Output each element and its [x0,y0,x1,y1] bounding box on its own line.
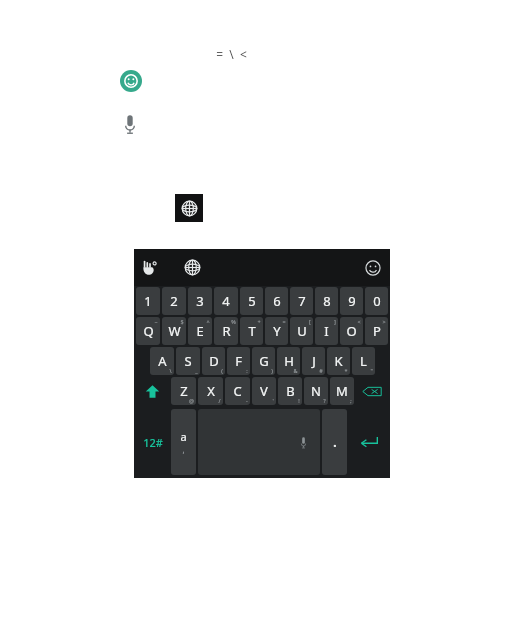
staticText: S [184,352,192,370]
staticText: ? [323,397,326,404]
staticText: , [182,444,185,455]
button[interactable]: 12# [135,407,170,477]
staticText: K [334,352,343,370]
staticText: F [235,352,242,370]
button[interactable]: Z [171,377,196,405]
staticText: P [373,322,381,340]
button[interactable]: 1 [136,287,160,315]
button[interactable]: A [150,347,174,375]
staticText: > [382,318,386,325]
staticText: B [286,382,295,400]
staticText: a [180,429,187,444]
staticText: 9 [348,292,356,310]
staticText: & [293,367,298,374]
button[interactable]: Backspace [355,376,389,406]
button[interactable]: C [225,377,250,405]
button[interactable]: S [176,347,200,375]
staticText: 6 [273,292,281,310]
staticText: O [346,322,357,340]
button[interactable]: 7 [290,287,313,315]
button[interactable]: B [278,377,302,405]
staticText: ; [350,397,352,404]
staticText: U [297,322,307,340]
button[interactable]: P [365,317,388,345]
button[interactable]: Shift [135,376,170,406]
staticText: Z [180,382,188,400]
button[interactable]: W [162,317,186,345]
button[interactable]: R [214,317,238,345]
button[interactable]: . [322,409,347,475]
button[interactable]: 9 [340,287,363,315]
staticText: = \ < [216,46,247,62]
staticText: \ [169,367,172,374]
button[interactable]: 4 [214,287,238,315]
button[interactable]: Q [136,317,160,345]
button[interactable]: Language [184,259,201,276]
staticText: G [259,352,269,370]
button[interactable]: U [290,317,313,345]
button[interactable]: X [198,377,223,405]
button[interactable]: 8 [315,287,338,315]
staticText: 5 [248,292,256,310]
staticText: ~ [154,318,158,325]
staticText: " [370,367,373,374]
button[interactable]: Emoji [120,70,142,92]
button[interactable]: Select input language [171,409,196,475]
staticText: ' [272,397,274,404]
button[interactable]: K [327,347,350,375]
button[interactable]: H [277,347,300,375]
staticText: ] [334,318,336,325]
staticText: 3 [196,292,204,310]
staticText: @ [189,397,194,404]
staticText: I [324,322,329,340]
button[interactable]: O [340,317,363,345]
staticText: [ [309,318,311,325]
staticText: - [246,397,248,404]
button[interactable]: Space [198,409,320,475]
button[interactable]: Y [265,317,288,345]
staticText: $ [180,318,184,325]
staticText: / [218,397,221,404]
button[interactable]: M [330,377,354,405]
button[interactable]: Emoji [365,260,381,276]
staticText: N [311,382,321,400]
button[interactable]: Gesture typing [141,259,158,276]
staticText: + [257,318,261,325]
staticText: W [168,322,181,340]
button[interactable]: 2 [162,287,186,315]
staticText: _ [195,367,198,374]
staticText: 0 [373,292,381,310]
button[interactable]: Enter [348,407,389,477]
button[interactable]: T [240,317,263,345]
staticText: % [231,318,236,325]
staticText: C [233,382,242,400]
button[interactable]: I [315,317,338,345]
staticText: * [344,367,348,374]
button[interactable]: L [352,347,375,375]
staticText: L [360,352,367,370]
staticText: Q [143,322,154,340]
staticText: D [209,352,219,370]
staticText: ) [271,367,273,374]
staticText: ^ [206,318,210,325]
button[interactable]: 5 [240,287,263,315]
button[interactable]: F [227,347,250,375]
button[interactable]: N [304,377,328,405]
staticText: X [207,382,215,400]
button[interactable]: Change language [175,194,203,222]
button[interactable]: V [252,377,276,405]
button[interactable]: 3 [188,287,212,315]
button[interactable]: 0 [365,287,388,315]
button[interactable]: J [302,347,325,375]
button[interactable]: E [188,317,212,345]
staticText: E [196,322,204,340]
button[interactable]: 6 [265,287,288,315]
button[interactable]: G [252,347,275,375]
staticText: . [333,434,337,450]
staticText: = [282,318,286,325]
staticText: 1 [144,292,152,310]
staticText: : [246,367,248,374]
staticText: Y [273,322,281,340]
button[interactable]: D [202,347,225,375]
button[interactable]: Voice input [121,113,139,135]
